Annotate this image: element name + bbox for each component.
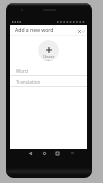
button[interactable]: Choose image <box>38 40 59 61</box>
button[interactable]: Word <box>10 68 87 76</box>
button[interactable]: Delete <box>76 28 82 34</box>
staticText: Add a new word <box>15 27 54 34</box>
staticText: Choose image <box>38 54 59 61</box>
button[interactable]: Back <box>26 149 34 157</box>
staticText: Word <box>16 68 28 74</box>
button[interactable]: Save <box>80 28 86 34</box>
button[interactable]: Recents <box>53 149 61 157</box>
staticText: Translation <box>16 79 41 85</box>
button[interactable]: Home <box>40 149 48 157</box>
button[interactable]: Translation <box>10 79 87 87</box>
